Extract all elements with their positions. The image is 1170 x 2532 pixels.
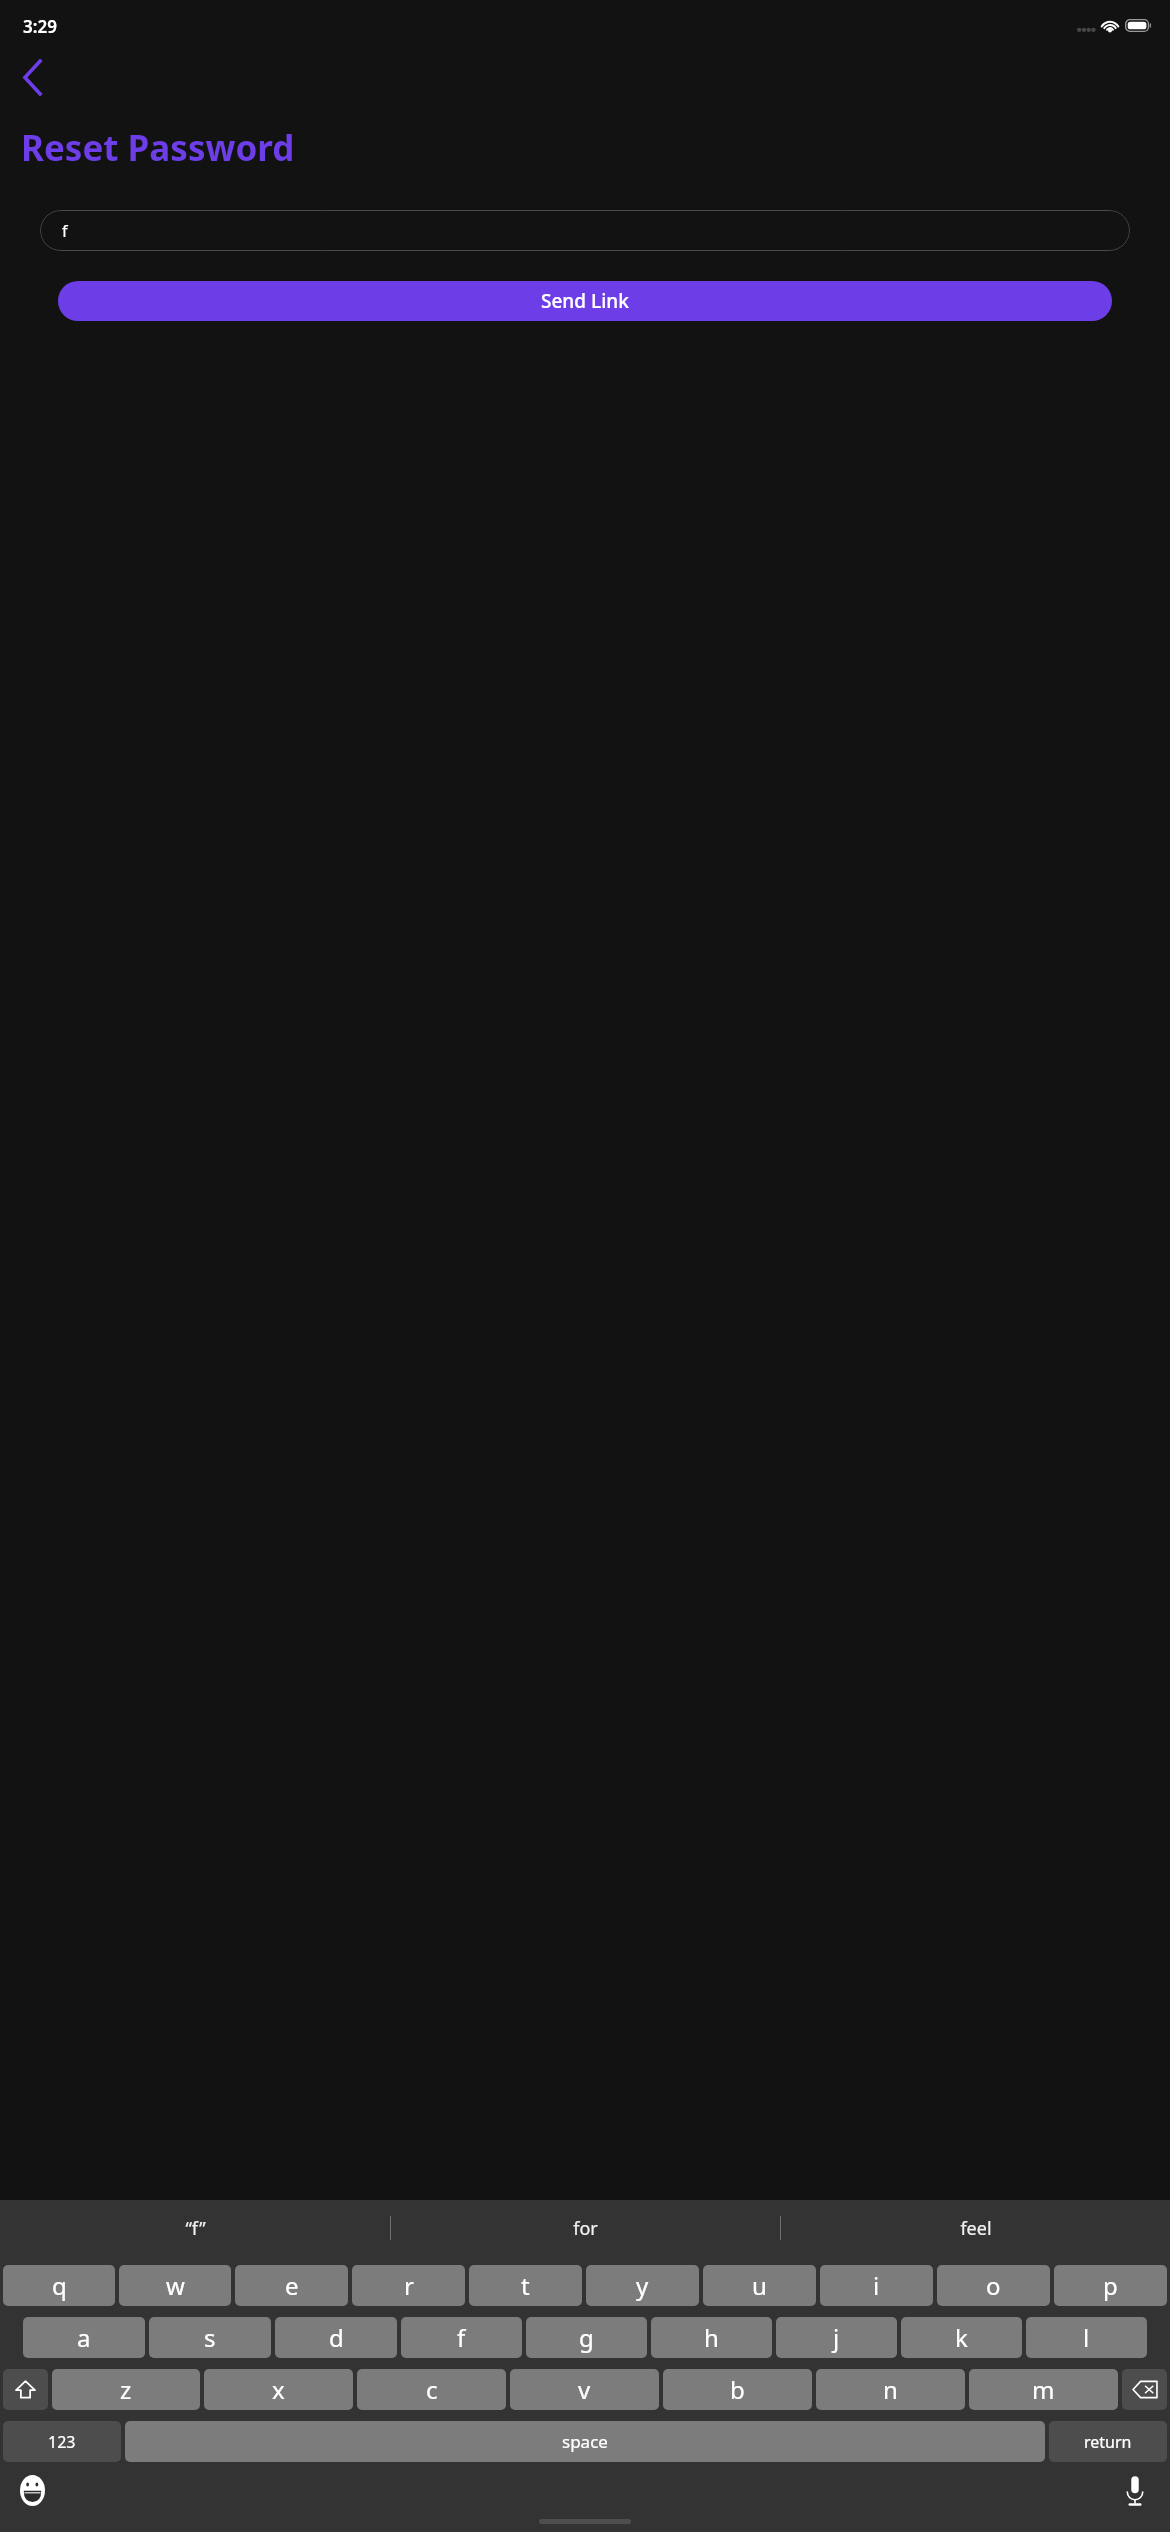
button[interactable]: Backspace — [1122, 2369, 1167, 2410]
button[interactable]: p — [1054, 2265, 1167, 2306]
button[interactable]: Emoji keyboard — [10, 2468, 54, 2512]
button[interactable]: l — [1026, 2317, 1147, 2358]
staticText: k — [955, 2321, 968, 2354]
staticText: 3:29 — [23, 15, 57, 38]
button[interactable]: Send Link — [58, 281, 1112, 321]
staticText: f — [62, 220, 68, 242]
button[interactable]: e — [235, 2265, 348, 2306]
staticText: o — [986, 2269, 1001, 2302]
button[interactable]: t — [469, 2265, 582, 2306]
button[interactable]: n — [816, 2369, 965, 2410]
staticText: f — [457, 2321, 466, 2354]
button[interactable]: y — [586, 2265, 699, 2306]
button[interactable]: for — [391, 2200, 780, 2256]
staticText: feel — [960, 2216, 992, 2241]
staticText: p — [1103, 2269, 1118, 2302]
staticText: d — [329, 2321, 344, 2354]
button[interactable]: space — [125, 2421, 1045, 2462]
button[interactable]: a — [23, 2317, 145, 2358]
button[interactable]: “f” — [0, 2200, 390, 2256]
button[interactable]: Shift — [3, 2369, 48, 2410]
staticText: g — [579, 2321, 594, 2354]
button[interactable]: k — [901, 2317, 1022, 2358]
staticText: space — [562, 2430, 608, 2453]
staticText: a — [77, 2321, 91, 2354]
button[interactable]: z — [52, 2369, 200, 2410]
staticText: x — [272, 2373, 285, 2406]
staticText: h — [704, 2321, 719, 2354]
button[interactable]: i — [820, 2265, 933, 2306]
staticText: for — [573, 2216, 598, 2241]
staticText: w — [166, 2269, 185, 2302]
button[interactable]: f — [401, 2317, 522, 2358]
button[interactable]: w — [119, 2265, 231, 2306]
staticText: “f” — [185, 2216, 206, 2241]
button[interactable]: u — [703, 2265, 816, 2306]
staticText: Send Link — [541, 288, 629, 314]
button[interactable]: j — [776, 2317, 897, 2358]
staticText: i — [873, 2269, 880, 2302]
staticText: b — [730, 2373, 745, 2406]
staticText: c — [426, 2373, 438, 2406]
button[interactable]: d — [275, 2317, 397, 2358]
staticText: e — [285, 2269, 299, 2302]
button[interactable]: g — [526, 2317, 647, 2358]
staticText: r — [404, 2269, 414, 2302]
button[interactable]: b — [663, 2369, 812, 2410]
button[interactable]: Dictation — [1113, 2468, 1157, 2512]
button[interactable]: Back — [5, 50, 59, 104]
staticText: v — [578, 2373, 591, 2406]
button[interactable]: s — [149, 2317, 271, 2358]
button[interactable]: h — [651, 2317, 772, 2358]
button[interactable]: c — [357, 2369, 506, 2410]
staticText: return — [1084, 2431, 1132, 2453]
staticText: t — [521, 2269, 530, 2302]
staticText: 123 — [48, 2431, 76, 2453]
staticText: Reset Password — [21, 124, 295, 172]
staticText: q — [52, 2269, 67, 2302]
button[interactable]: o — [937, 2265, 1050, 2306]
button[interactable]: f — [40, 210, 1130, 251]
staticText: u — [752, 2269, 767, 2302]
button[interactable]: feel — [781, 2200, 1170, 2256]
button[interactable]: x — [204, 2369, 353, 2410]
staticText: s — [204, 2321, 216, 2354]
staticText: m — [1032, 2373, 1055, 2406]
button[interactable]: v — [510, 2369, 659, 2410]
staticText: z — [120, 2373, 132, 2406]
button[interactable]: r — [352, 2265, 465, 2306]
button[interactable]: m — [969, 2369, 1118, 2410]
button[interactable]: q — [3, 2265, 115, 2306]
button[interactable]: return — [1049, 2421, 1167, 2462]
staticText: y — [636, 2269, 649, 2302]
staticText: n — [883, 2373, 898, 2406]
staticText: l — [1083, 2321, 1090, 2354]
staticText: j — [833, 2321, 840, 2354]
button[interactable]: 123 — [3, 2421, 121, 2462]
